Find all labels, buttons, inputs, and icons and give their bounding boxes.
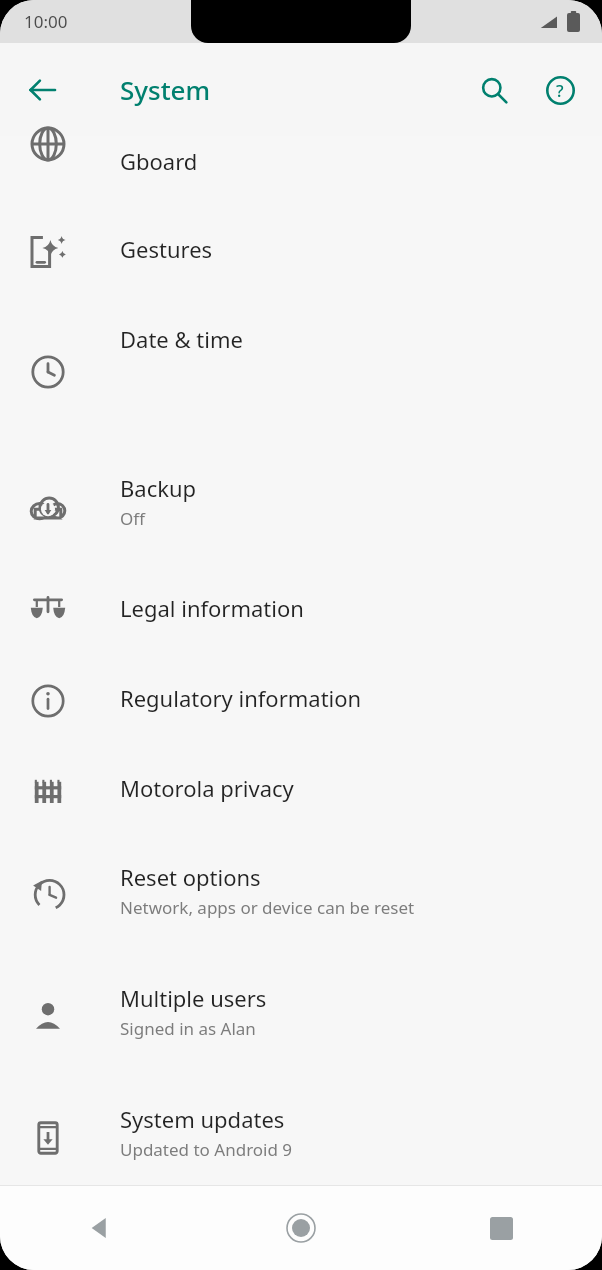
button[interactable] bbox=[0, 751, 602, 821]
staticText: Multiple users bbox=[120, 983, 267, 1013]
staticText: Date & time bbox=[120, 324, 243, 354]
staticText: Signed in as Alan bbox=[120, 1017, 256, 1040]
staticText: Backup bbox=[120, 473, 197, 503]
button[interactable] bbox=[0, 212, 602, 282]
button[interactable] bbox=[0, 451, 602, 543]
button[interactable]: Recent apps bbox=[401, 1186, 602, 1270]
button[interactable] bbox=[0, 961, 602, 1053]
staticText: System updates bbox=[120, 1104, 285, 1134]
button[interactable] bbox=[0, 302, 602, 372]
button[interactable] bbox=[0, 661, 602, 731]
staticText: Gestures bbox=[120, 234, 213, 264]
staticText: Regulatory information bbox=[120, 683, 362, 713]
staticText: Updated to Android 9 bbox=[120, 1138, 293, 1161]
button[interactable]: Back bbox=[14, 62, 70, 118]
staticText: Legal information bbox=[120, 593, 304, 623]
button[interactable]: Search bbox=[466, 62, 522, 118]
staticText: Network, apps or device can be reset bbox=[120, 896, 415, 919]
button[interactable]: Help bbox=[532, 62, 588, 118]
button[interactable] bbox=[0, 1082, 602, 1174]
button[interactable] bbox=[0, 840, 602, 932]
staticText: Reset options bbox=[120, 862, 261, 892]
staticText: System bbox=[120, 72, 211, 107]
staticText: Gboard bbox=[120, 146, 198, 176]
staticText: Motorola privacy bbox=[120, 773, 294, 803]
staticText: ? bbox=[556, 79, 564, 102]
staticText: Off bbox=[120, 507, 145, 530]
button[interactable] bbox=[0, 124, 602, 194]
button[interactable] bbox=[0, 571, 602, 641]
staticText: 10:00 bbox=[24, 10, 68, 33]
button[interactable]: Home bbox=[200, 1186, 401, 1270]
button[interactable]: Back bbox=[0, 1186, 200, 1270]
